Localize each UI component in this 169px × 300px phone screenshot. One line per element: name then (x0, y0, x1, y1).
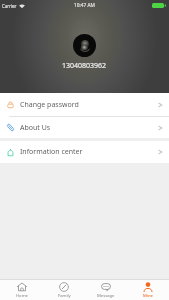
button[interactable]: About Us (0, 117, 169, 138)
button[interactable]: Family (43, 280, 85, 300)
staticText: Family (58, 293, 71, 299)
staticText: Information center (20, 147, 83, 157)
staticText: 13040803962 (62, 61, 107, 71)
staticText: Message (97, 293, 115, 299)
staticText: Home (16, 293, 28, 299)
button[interactable]: Change password (0, 93, 169, 116)
button[interactable]: Profile photo (73, 34, 96, 57)
staticText: About Us (20, 123, 51, 133)
staticText: Change password (20, 100, 79, 110)
staticText: Carrier (2, 3, 17, 9)
button[interactable]: Information center (0, 141, 169, 163)
staticText: Mine (143, 293, 153, 299)
button[interactable]: Home (0, 280, 43, 300)
staticText: 10:47 AM (74, 2, 95, 9)
button[interactable]: Message (85, 280, 127, 300)
button[interactable]: Mine (127, 280, 169, 300)
